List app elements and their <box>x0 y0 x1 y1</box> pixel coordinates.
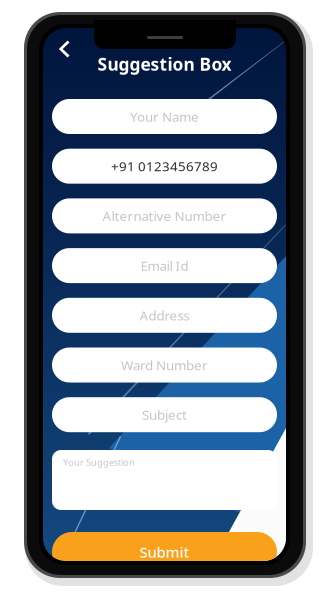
button[interactable]: Alternative Number <box>52 198 277 233</box>
staticText: Suggestion Box <box>97 52 231 75</box>
staticText: Email Id <box>140 257 188 274</box>
staticText: Your Suggestion <box>63 456 135 468</box>
staticText: Address <box>139 306 189 324</box>
button[interactable]: +91 0123456789 <box>52 149 277 184</box>
button[interactable]: Ward Number <box>52 347 277 382</box>
staticText: +91 0123456789 <box>111 157 218 175</box>
button[interactable]: Your Suggestion <box>52 450 277 510</box>
staticText: Submit <box>139 542 189 562</box>
staticText: Ward Number <box>121 356 208 374</box>
staticText: Subject <box>142 406 187 423</box>
button[interactable]: Address <box>52 298 277 333</box>
button[interactable]: Your Name <box>52 99 277 134</box>
button[interactable]: Subject <box>52 397 277 432</box>
button[interactable]: Email Id <box>52 248 277 283</box>
button[interactable]: Submit <box>52 532 277 572</box>
staticText: Your Name <box>130 108 199 125</box>
button[interactable]: Back <box>50 34 80 64</box>
staticText: Alternative Number <box>102 207 226 225</box>
